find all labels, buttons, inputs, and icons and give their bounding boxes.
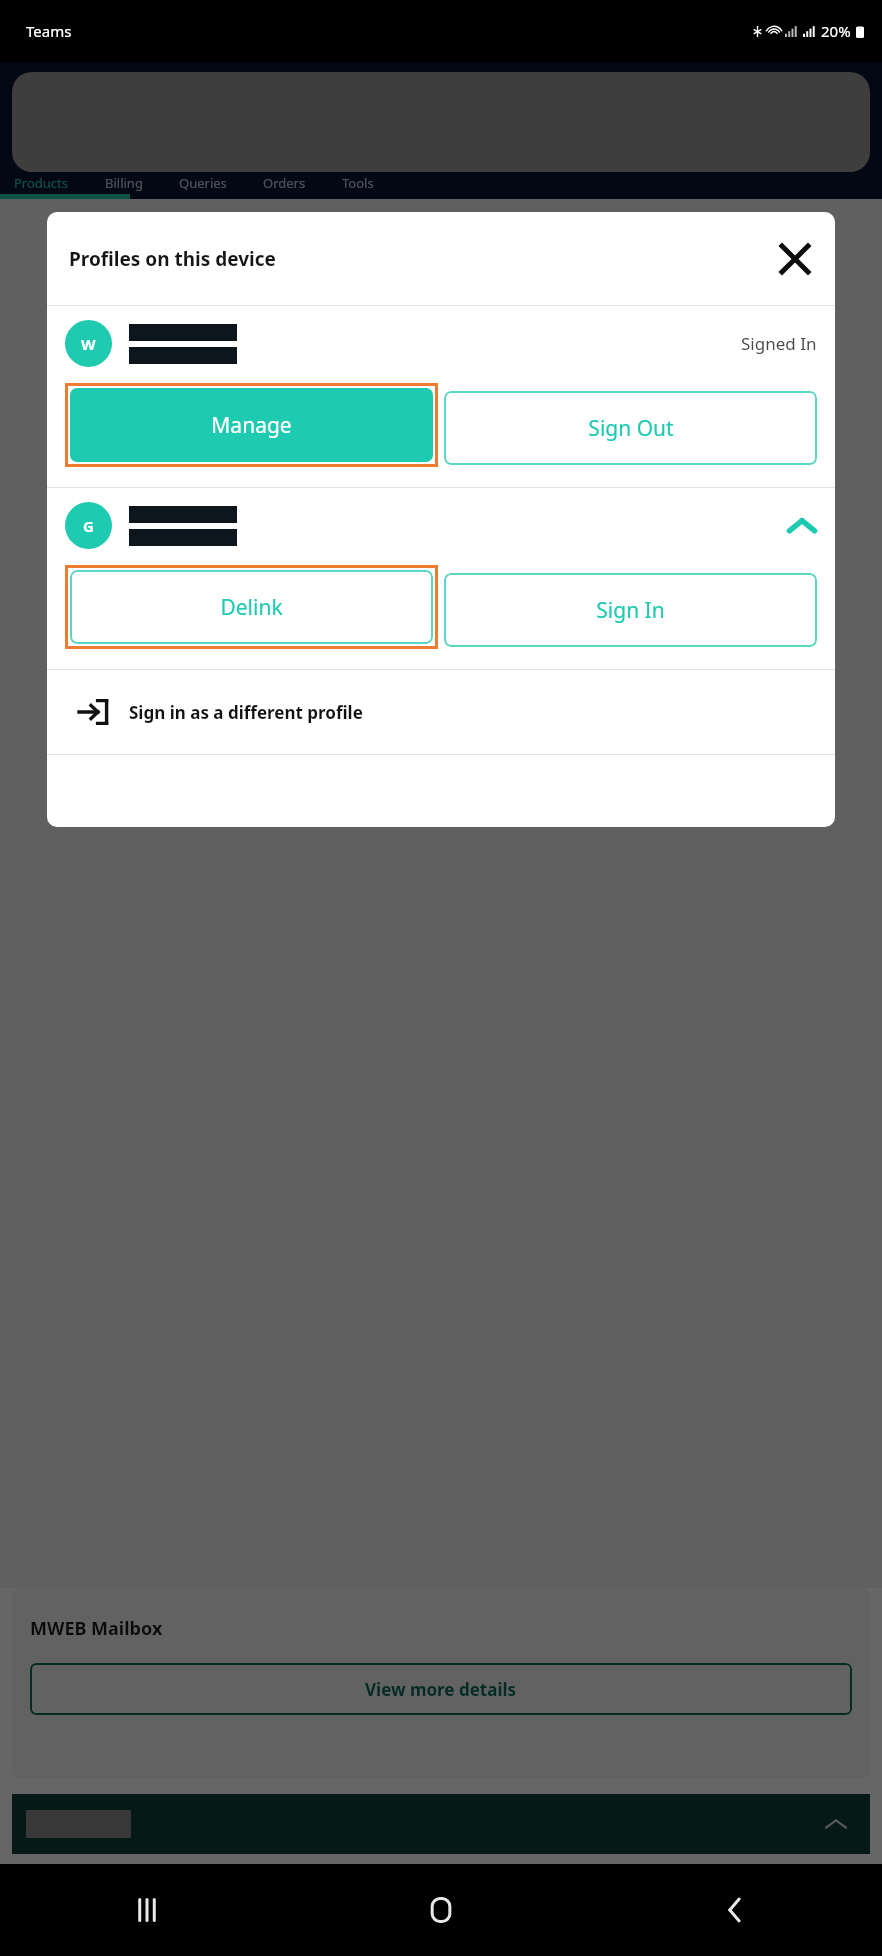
staticText: W bbox=[81, 334, 96, 354]
button[interactable]: Sign In bbox=[444, 573, 817, 647]
staticText: Teams bbox=[26, 21, 72, 41]
staticText: Signed In bbox=[741, 332, 817, 355]
staticText: Manage bbox=[211, 411, 292, 440]
staticText: Products bbox=[14, 174, 69, 192]
staticText: 20% bbox=[821, 21, 851, 41]
button[interactable]: Sign Out bbox=[444, 391, 817, 465]
button[interactable]: Sign in as a different profile bbox=[47, 670, 835, 754]
staticText: Sign Out bbox=[588, 414, 674, 443]
staticText: G bbox=[83, 516, 94, 536]
staticText: View more details bbox=[365, 1678, 517, 1701]
staticText: Profiles on this device bbox=[69, 246, 276, 272]
staticText: Queries bbox=[179, 174, 227, 192]
button[interactable]: Manage bbox=[70, 388, 433, 462]
staticText: Sign In bbox=[596, 596, 665, 625]
button[interactable]: Close bbox=[773, 237, 817, 281]
button[interactable]: Back bbox=[707, 1882, 763, 1938]
button[interactable]: View more details bbox=[30, 1663, 852, 1715]
button[interactable] bbox=[12, 1794, 870, 1854]
staticText: Billing bbox=[105, 174, 143, 192]
staticText: MWEB Mailbox bbox=[30, 1616, 163, 1641]
staticText: Sign in as a different profile bbox=[129, 701, 363, 724]
button[interactable]: Home bbox=[413, 1882, 469, 1938]
button[interactable]: Recents bbox=[119, 1882, 175, 1938]
staticText: Tools bbox=[342, 174, 374, 192]
staticText: Delink bbox=[220, 593, 283, 622]
button[interactable]: Delink bbox=[70, 570, 433, 644]
staticText: Orders bbox=[263, 174, 306, 192]
